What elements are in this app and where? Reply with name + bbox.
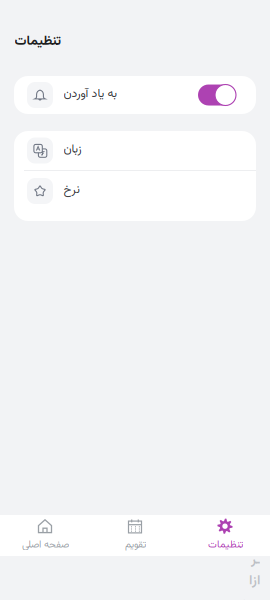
- staticText: تقویم: [124, 537, 145, 553]
- staticText: زبان: [63, 140, 81, 159]
- staticText: ازا: [248, 571, 259, 591]
- staticText: تنظیمات: [14, 31, 61, 52]
- staticText: ـر: [250, 550, 259, 571]
- button[interactable]: نرخ: [14, 171, 256, 221]
- staticText: به یاد آوردن: [63, 85, 117, 103]
- button[interactable]: به یاد آوردن: [14, 76, 256, 114]
- button[interactable]: تقویم: [90, 515, 180, 556]
- button[interactable]: زبان: [14, 131, 256, 170]
- staticText: صفحه اصلی: [21, 537, 68, 553]
- staticText: تنظیمات: [207, 537, 242, 553]
- button[interactable]: تنظیمات: [180, 515, 270, 556]
- button[interactable]: صفحه اصلی: [0, 515, 90, 556]
- staticText: نرخ: [63, 181, 79, 199]
